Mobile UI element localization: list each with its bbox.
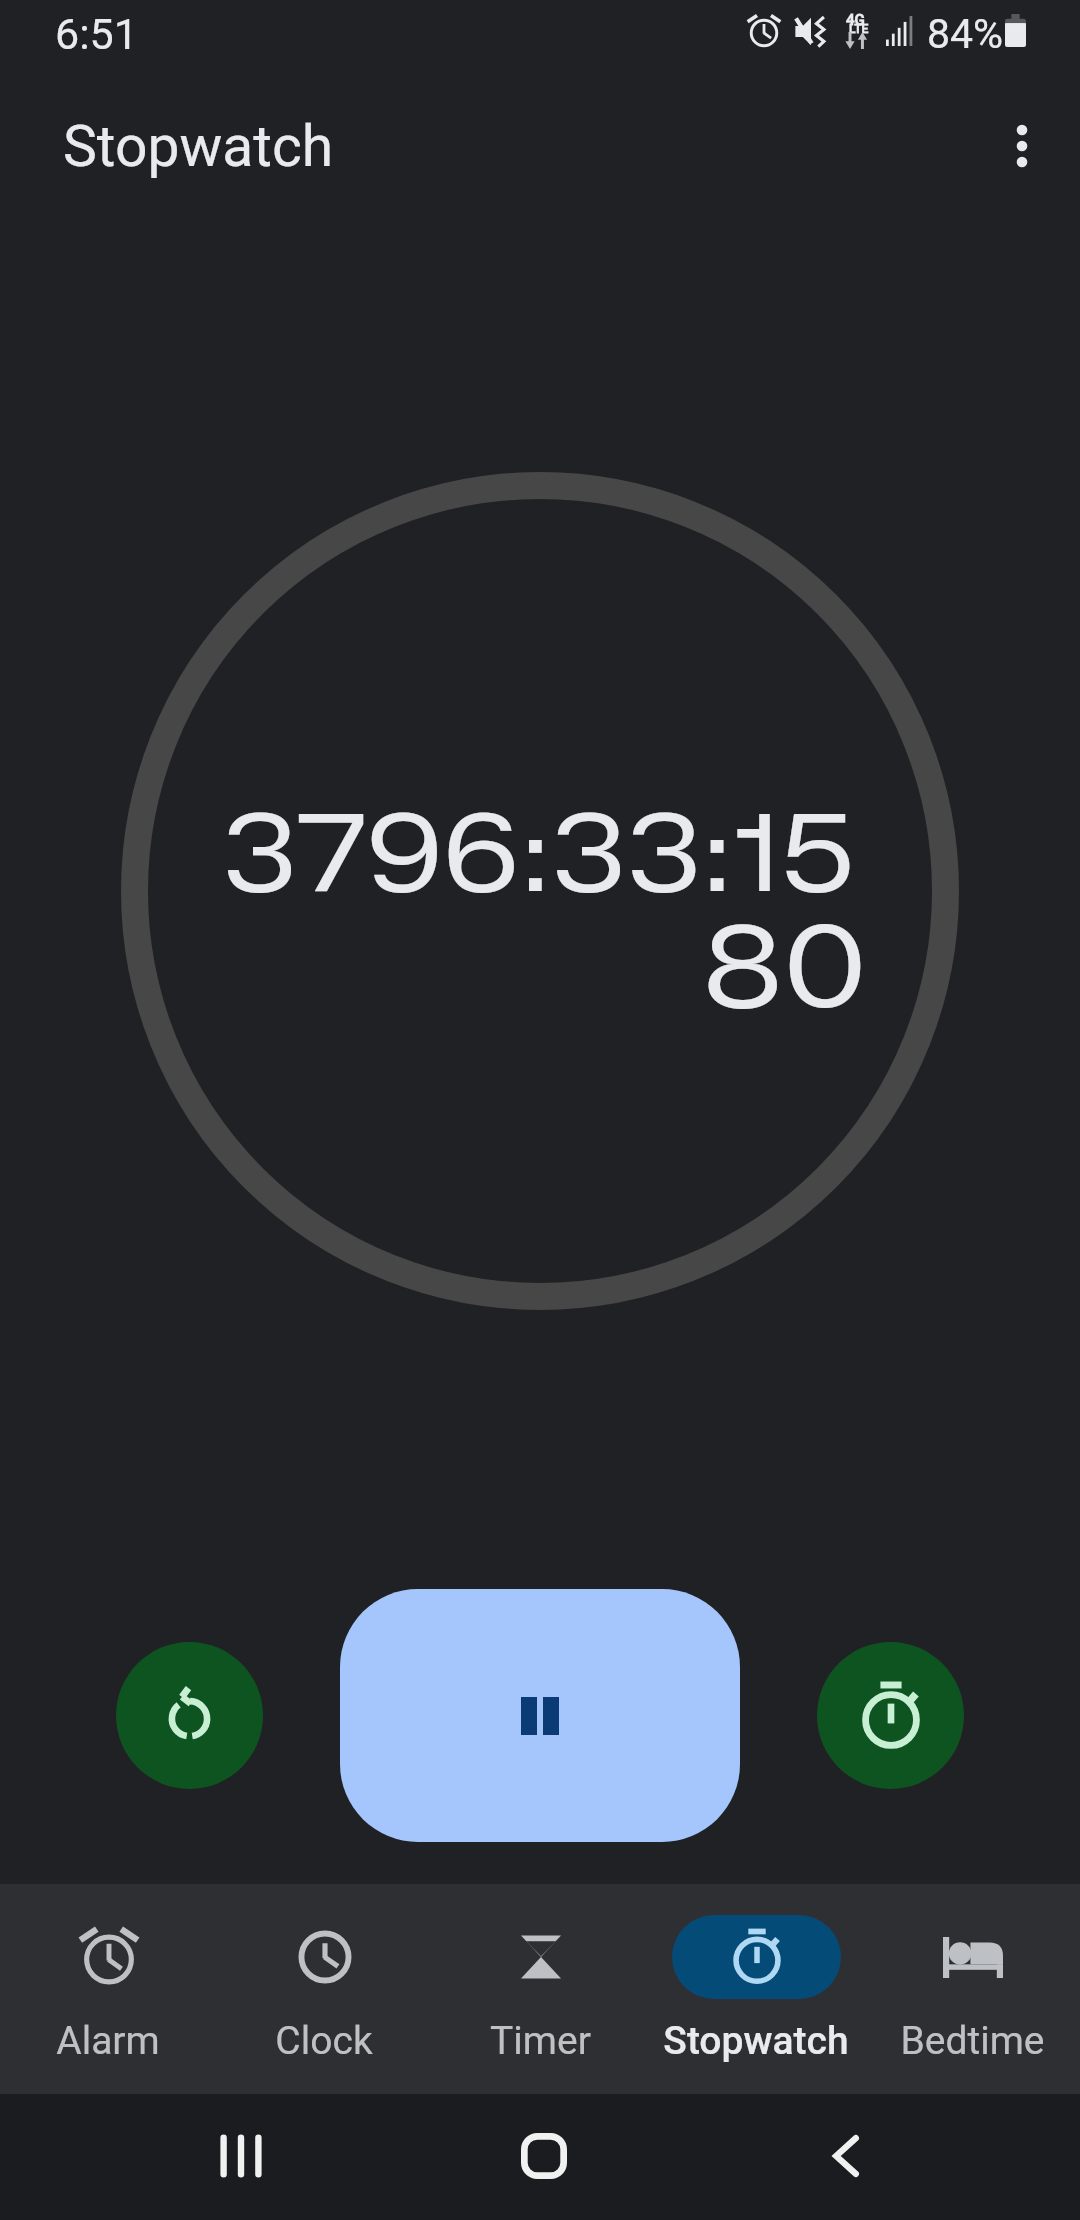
button[interactable]: Timer [432, 1884, 648, 2094]
button[interactable]: Back [801, 2111, 891, 2201]
staticText: 80 [702, 897, 867, 1036]
button[interactable]: Alarm [0, 1884, 216, 2094]
button[interactable]: Recent apps [196, 2111, 286, 2201]
staticText: Clock [275, 2018, 373, 2064]
button[interactable]: Stopwatch [648, 1884, 864, 2094]
button[interactable]: Bedtime [864, 1884, 1080, 2094]
button[interactable]: Lap [817, 1642, 964, 1789]
staticText: Timer [490, 2018, 591, 2064]
button[interactable]: Home [499, 2111, 589, 2201]
staticText: 3796:33:15 [222, 787, 856, 918]
staticText: Stopwatch [663, 2018, 849, 2064]
staticText: LTE [849, 22, 869, 36]
button[interactable]: Clock [216, 1884, 432, 2094]
staticText: Alarm [56, 2018, 160, 2064]
button[interactable]: Reset [116, 1642, 263, 1789]
staticText: Stopwatch [63, 113, 334, 180]
staticText: Bedtime [900, 2018, 1045, 2064]
staticText: 6:51 [55, 9, 138, 59]
staticText: 84% [927, 10, 1004, 58]
button[interactable]: Pause [340, 1589, 740, 1842]
button[interactable]: More options [974, 98, 1070, 194]
staticText: 4G [846, 11, 865, 29]
